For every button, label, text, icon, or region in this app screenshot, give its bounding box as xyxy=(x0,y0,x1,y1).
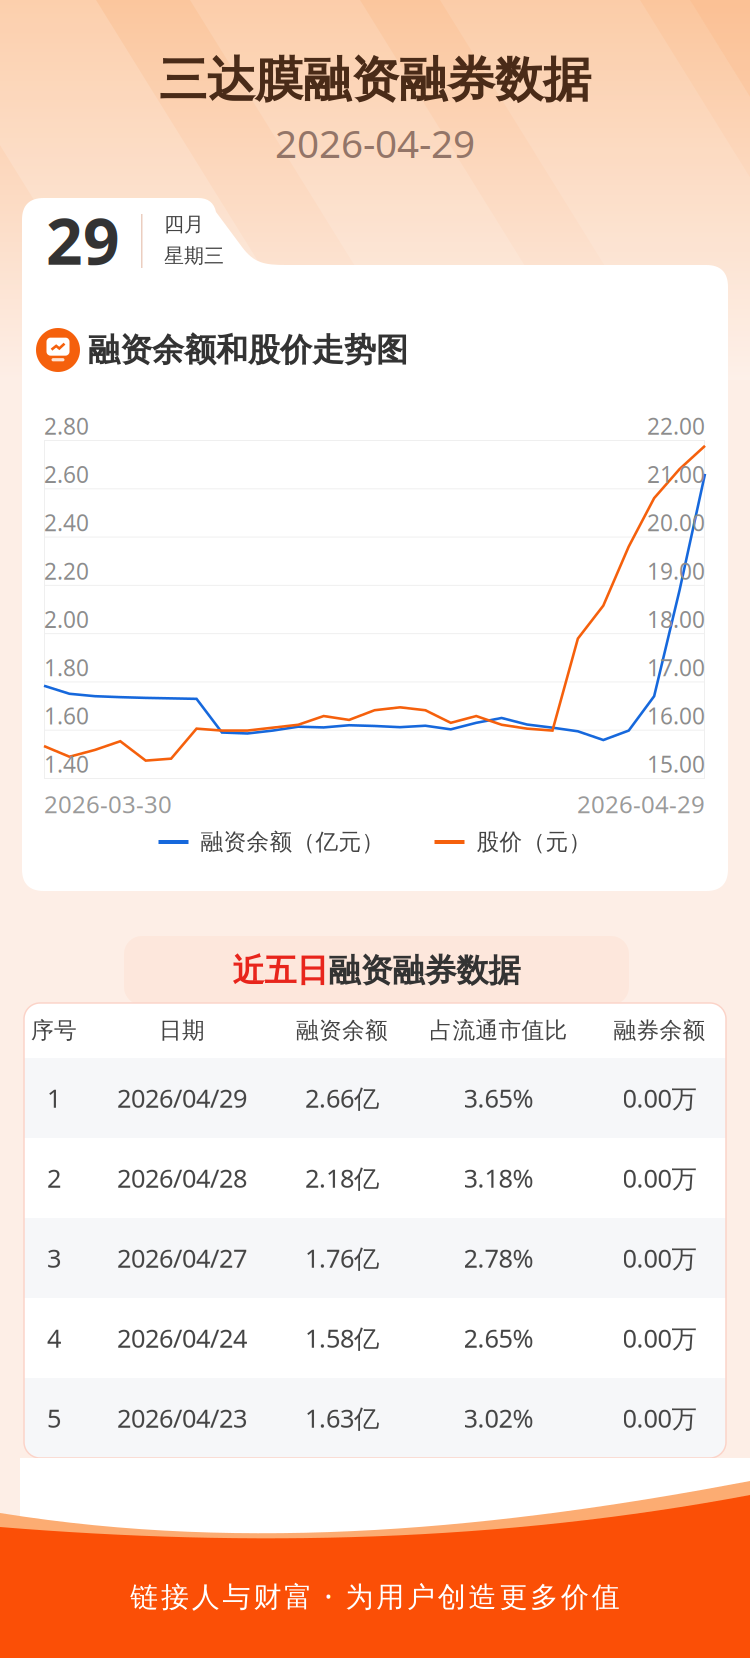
staticText: 20.00 xyxy=(647,507,705,538)
staticText: 2026-04-29 xyxy=(275,117,475,169)
staticText: 融资融券数据 xyxy=(328,951,520,990)
staticText: 29 xyxy=(46,197,120,282)
staticText: 1.58亿 xyxy=(305,1321,379,1355)
staticText: 0.00万 xyxy=(622,1321,696,1355)
staticText: 0.00万 xyxy=(622,1241,696,1275)
staticText: 近五日 xyxy=(232,951,328,990)
staticText: 0.00万 xyxy=(622,1401,696,1435)
staticText: 2026/04/28 xyxy=(117,1161,247,1195)
staticText: 2026-03-30 xyxy=(44,788,172,820)
staticText: 2.66亿 xyxy=(305,1081,379,1115)
staticText: 2 xyxy=(47,1161,61,1195)
staticText: 2026/04/29 xyxy=(117,1081,247,1115)
staticText: 1.60 xyxy=(44,701,89,731)
staticText: 18.00 xyxy=(647,604,705,634)
staticText: 2026/04/23 xyxy=(117,1401,247,1435)
staticText: 16.00 xyxy=(647,701,705,731)
staticText: 融资余额和股价走势图 xyxy=(88,330,408,370)
staticText: 2.40 xyxy=(44,507,89,538)
staticText: 2.78% xyxy=(463,1241,533,1275)
staticText: 股价（元） xyxy=(476,828,591,856)
staticText: 日期 xyxy=(159,1017,205,1044)
staticText: 17.00 xyxy=(647,652,705,682)
staticText: 融资余额（亿元） xyxy=(200,828,384,856)
staticText: 2.20 xyxy=(44,556,89,586)
staticText: 21.00 xyxy=(647,459,705,489)
staticText: 1.40 xyxy=(44,749,89,779)
staticText: 占流通市值比 xyxy=(429,1017,567,1044)
staticText: 星期三 xyxy=(164,243,224,268)
staticText: 5 xyxy=(47,1401,61,1435)
staticText: 19.00 xyxy=(647,556,705,586)
staticText: 2.65% xyxy=(463,1321,533,1355)
staticText: 3.02% xyxy=(463,1401,533,1435)
staticText: 融券余额 xyxy=(613,1017,705,1044)
staticText: 1.76亿 xyxy=(305,1241,379,1275)
staticText: 1.80 xyxy=(44,652,89,682)
staticText: 2.60 xyxy=(44,459,89,489)
staticText: 0.00万 xyxy=(622,1081,696,1115)
staticText: 1 xyxy=(47,1081,61,1115)
staticText: 0.00万 xyxy=(622,1161,696,1195)
staticText: 融资余额 xyxy=(296,1017,388,1044)
staticText: 2.80 xyxy=(44,411,89,441)
staticText: 22.00 xyxy=(647,411,705,441)
staticText: 3 xyxy=(47,1241,61,1275)
staticText: 2.00 xyxy=(44,604,89,634)
staticText: 四月 xyxy=(164,212,204,236)
staticText: 3.65% xyxy=(463,1081,533,1115)
staticText: 三达膜融资融券数据 xyxy=(159,50,591,109)
staticText: 链接人与财富 · 为用户创造更多价值 xyxy=(130,1577,620,1615)
staticText: 2026-04-29 xyxy=(577,788,705,820)
staticText: 15.00 xyxy=(647,749,705,779)
staticText: 2.18亿 xyxy=(305,1161,379,1195)
staticText: 2026/04/24 xyxy=(117,1321,247,1355)
staticText: 4 xyxy=(47,1321,61,1355)
staticText: 序号 xyxy=(31,1017,77,1044)
staticText: 1.63亿 xyxy=(305,1401,379,1435)
staticText: 3.18% xyxy=(463,1161,533,1195)
staticText: 2026/04/27 xyxy=(117,1241,247,1275)
